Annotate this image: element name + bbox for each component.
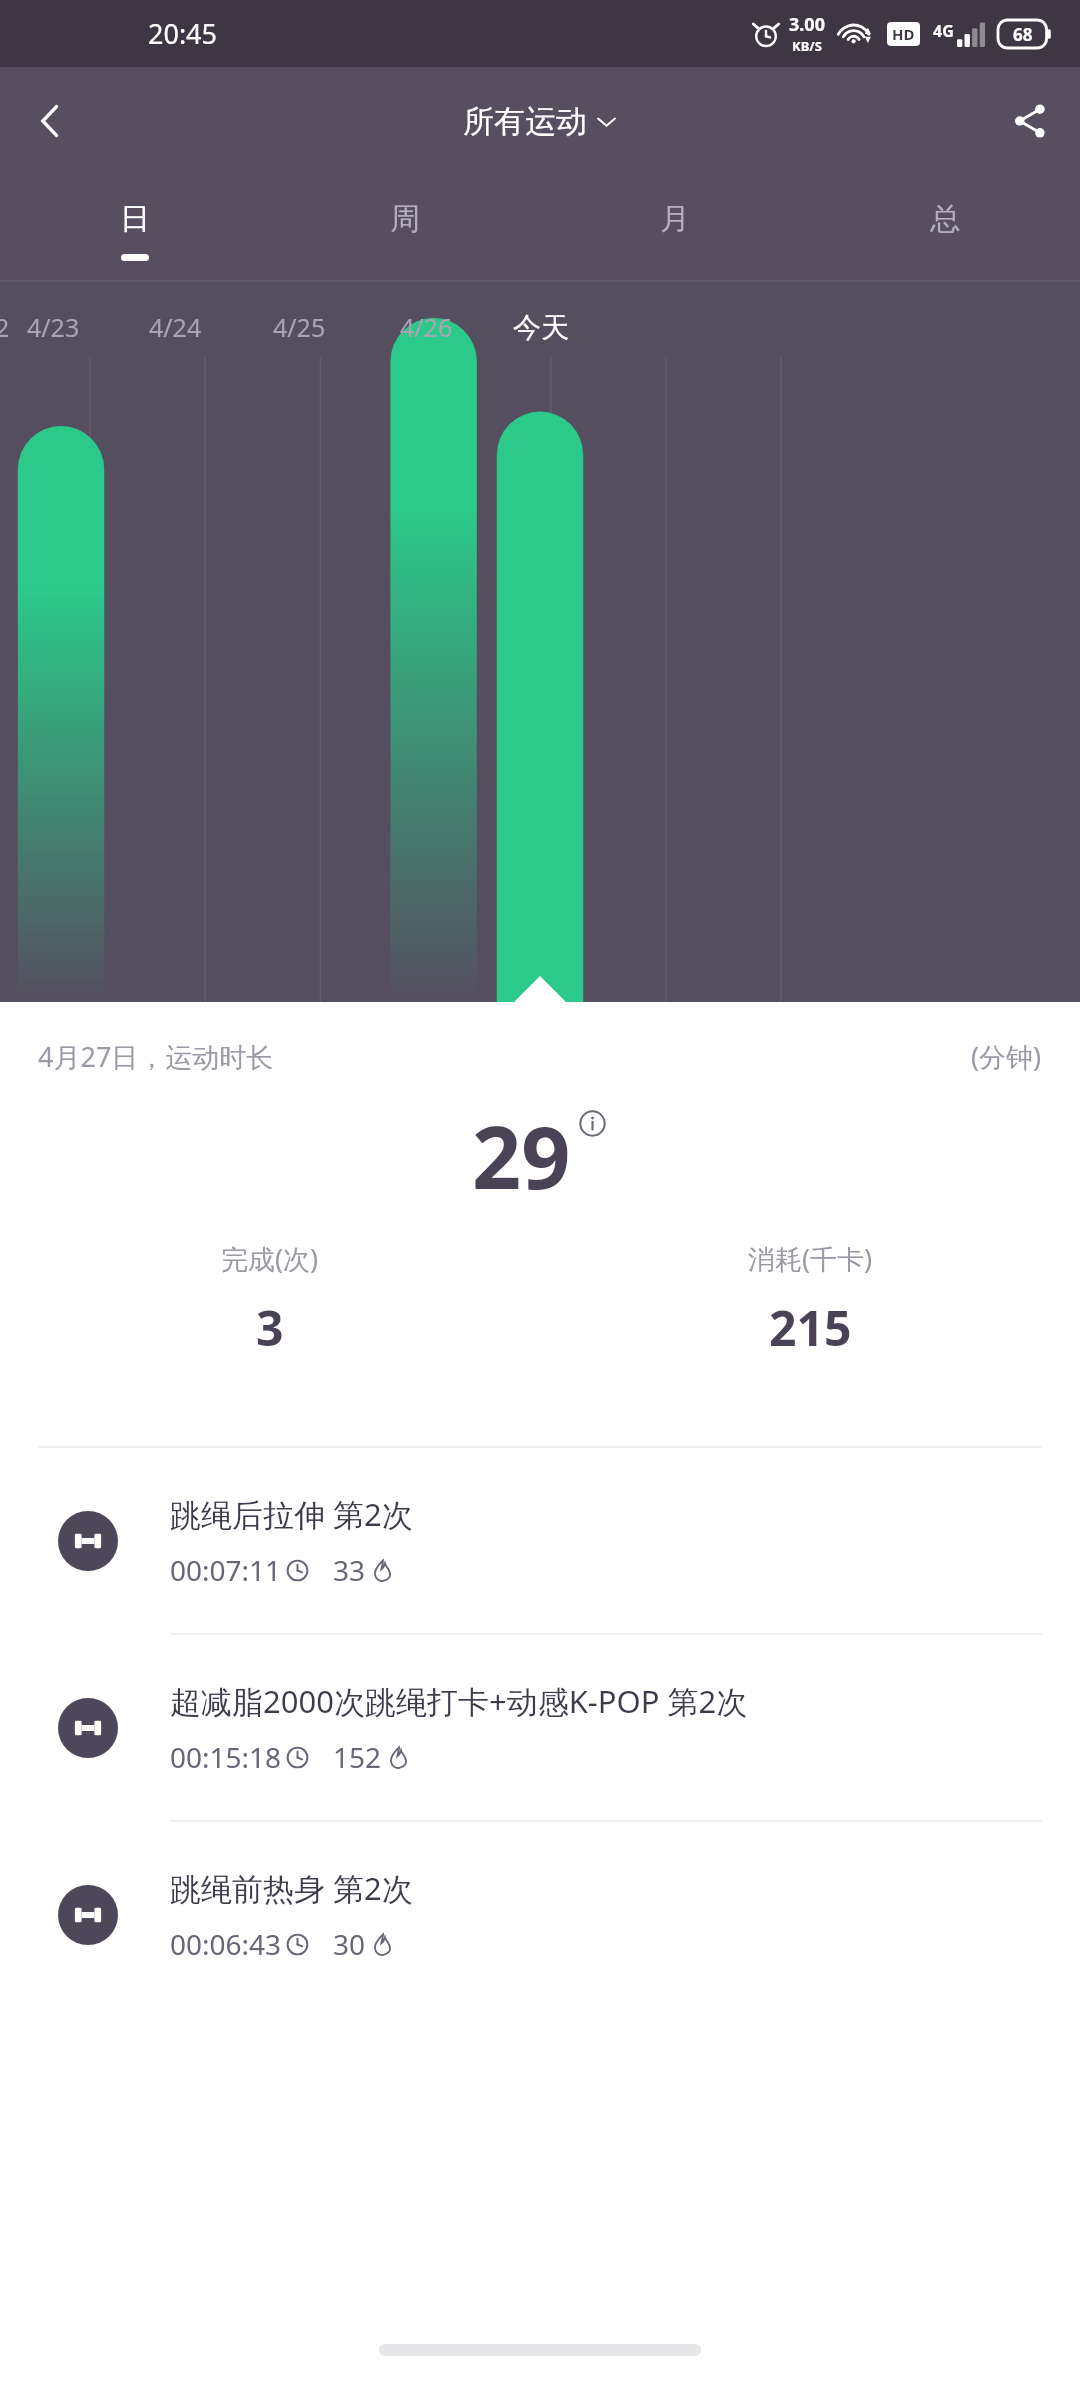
button[interactable]: Back [0, 71, 100, 171]
staticText: HD [892, 24, 915, 44]
staticText: 4G [933, 20, 954, 42]
staticText: 3 [256, 1295, 284, 1360]
button[interactable]: 月 [540, 175, 810, 280]
staticText: 4/26 [400, 310, 453, 344]
button[interactable]: 跳绳后拉伸 第2次 [0, 1448, 1080, 1633]
button[interactable]: 超减脂2000次跳绳打卡+动感K-POP 第2次 [0, 1635, 1080, 1820]
staticText: 日 [120, 200, 150, 238]
button[interactable]: 周 [270, 175, 540, 280]
staticText: 完成(次) [221, 1240, 319, 1277]
staticText: KB/S [792, 37, 822, 55]
staticText: 跳绳前热身 第2次 [170, 1867, 413, 1909]
staticText: 4/23 [27, 310, 80, 344]
staticText: 20:45 [148, 15, 218, 52]
staticText: 今天 [513, 310, 569, 345]
staticText: 00:15:18 [170, 1738, 282, 1776]
staticText: 68 [1013, 23, 1033, 46]
button[interactable]: Share [980, 71, 1080, 171]
staticText: 00:07:11 [170, 1551, 282, 1589]
staticText: 2 [0, 310, 10, 344]
staticText: 33 [333, 1551, 366, 1589]
staticText: 215 [769, 1295, 852, 1360]
staticText: 4月27日，运动时长 [38, 1038, 274, 1075]
button[interactable]: 日 [0, 175, 270, 280]
staticText: 总 [930, 200, 960, 238]
staticText: 超减脂2000次跳绳打卡+动感K-POP 第2次 [170, 1680, 748, 1722]
staticText: 月 [660, 200, 690, 238]
button[interactable]: 所有运动 [455, 94, 625, 149]
button[interactable]: Info [576, 1107, 608, 1139]
staticText: 所有运动 [463, 102, 587, 141]
staticText: 周 [390, 200, 420, 238]
staticText: 4/24 [149, 310, 202, 344]
staticText: 30 [333, 1925, 366, 1963]
staticText: 跳绳后拉伸 第2次 [170, 1493, 413, 1535]
staticText: (分钟) [971, 1038, 1042, 1075]
staticText: 消耗(千卡) [748, 1240, 873, 1277]
button[interactable]: 总 [810, 175, 1080, 280]
button[interactable]: 跳绳前热身 第2次 [0, 1822, 1080, 2007]
staticText: 152 [333, 1738, 382, 1776]
staticText: 4/25 [273, 310, 326, 344]
staticText: 3.00 [789, 12, 825, 37]
staticText: 29 [472, 1097, 571, 1214]
staticText: 00:06:43 [170, 1925, 282, 1963]
